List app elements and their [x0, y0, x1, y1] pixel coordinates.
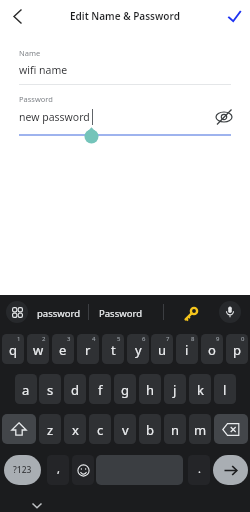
- staticText: x: [72, 421, 79, 439]
- staticText: y: [135, 341, 142, 359]
- staticText: t: [111, 341, 116, 359]
- staticText: m: [194, 421, 207, 439]
- staticText: j: [173, 381, 177, 399]
- button[interactable]: [72, 455, 94, 485]
- staticText: .: [198, 461, 201, 476]
- staticText: Edit Name & Password: [70, 9, 180, 23]
- button[interactable]: [214, 414, 248, 444]
- staticText: p: [233, 341, 241, 359]
- staticText: q: [9, 341, 17, 359]
- button[interactable]: [222, 4, 246, 28]
- button[interactable]: m: [189, 414, 211, 444]
- staticText: k: [197, 381, 204, 399]
- button[interactable]: ?123: [4, 455, 41, 485]
- button[interactable]: [212, 105, 235, 128]
- staticText: 6: [142, 335, 146, 343]
- button[interactable]: v: [114, 414, 136, 444]
- staticText: 0: [241, 335, 245, 343]
- staticText: c: [97, 421, 104, 439]
- staticText: e: [59, 341, 67, 359]
- staticText: 3: [67, 335, 71, 343]
- staticText: 5: [117, 335, 121, 343]
- button[interactable]: z: [39, 414, 61, 444]
- staticText: g: [121, 381, 129, 399]
- button[interactable]: h: [139, 374, 161, 404]
- button[interactable]: y: [127, 334, 149, 364]
- staticText: 8: [191, 335, 195, 343]
- staticText: f: [98, 381, 103, 399]
- staticText: Password: [19, 94, 53, 104]
- button[interactable]: b: [139, 414, 161, 444]
- staticText: 7: [166, 335, 170, 343]
- staticText: i: [185, 341, 189, 359]
- staticText: Name: [19, 48, 41, 58]
- staticText: d: [71, 381, 79, 399]
- button[interactable]: j: [164, 374, 186, 404]
- button[interactable]: [6, 301, 28, 323]
- button[interactable]: [219, 301, 241, 323]
- button[interactable]: [178, 300, 204, 326]
- button[interactable]: k: [189, 374, 211, 404]
- button[interactable]: q: [2, 334, 24, 364]
- staticText: w: [33, 341, 44, 359]
- button[interactable]: i: [176, 334, 198, 364]
- button[interactable]: n: [164, 414, 186, 444]
- button[interactable]: l: [214, 374, 236, 404]
- button[interactable]: ,: [47, 455, 69, 485]
- staticText: z: [47, 421, 54, 439]
- staticText: 2: [42, 335, 46, 343]
- button[interactable]: x: [64, 414, 86, 444]
- staticText: l: [223, 381, 227, 399]
- staticText: b: [146, 421, 154, 439]
- staticText: o: [208, 341, 216, 359]
- button[interactable]: w: [27, 334, 49, 364]
- staticText: 9: [216, 335, 220, 343]
- button[interactable]: password: [30, 299, 88, 327]
- staticText: n: [171, 421, 180, 439]
- button[interactable]: s: [39, 374, 61, 404]
- button[interactable]: [2, 414, 36, 444]
- staticText: h: [146, 381, 155, 399]
- button[interactable]: p: [226, 334, 248, 364]
- button[interactable]: u: [151, 334, 173, 364]
- button[interactable]: [213, 455, 248, 485]
- staticText: new password: [19, 110, 90, 124]
- staticText: Password: [99, 307, 142, 320]
- button[interactable]: o: [201, 334, 223, 364]
- button[interactable]: .: [188, 455, 210, 485]
- staticText: ?123: [13, 464, 32, 476]
- staticText: wifi name: [19, 63, 68, 77]
- button[interactable]: c: [89, 414, 111, 444]
- button[interactable]: r: [77, 334, 99, 364]
- staticText: ,: [57, 461, 60, 476]
- staticText: 4: [92, 335, 96, 343]
- button[interactable]: t: [102, 334, 124, 364]
- staticText: r: [85, 341, 91, 359]
- staticText: s: [47, 381, 54, 399]
- staticText: password: [37, 307, 81, 320]
- button[interactable]: Password: [89, 299, 152, 327]
- button[interactable]: [96, 455, 183, 485]
- button[interactable]: a: [15, 374, 37, 404]
- staticText: v: [122, 421, 129, 439]
- button[interactable]: g: [114, 374, 136, 404]
- staticText: 1: [17, 335, 21, 343]
- button[interactable]: f: [89, 374, 111, 404]
- button[interactable]: d: [64, 374, 86, 404]
- staticText: a: [22, 381, 30, 399]
- button[interactable]: [6, 4, 30, 28]
- button[interactable]: e: [52, 334, 74, 364]
- staticText: u: [158, 341, 167, 359]
